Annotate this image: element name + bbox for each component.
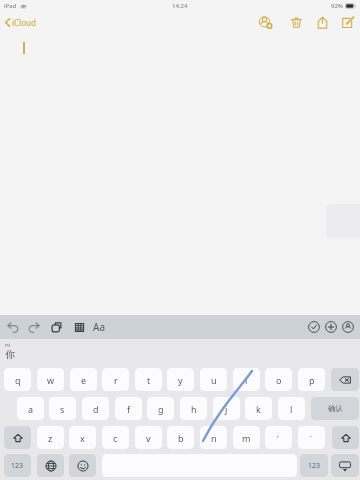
button[interactable]: Redo — [27, 320, 41, 334]
button[interactable]: p — [298, 368, 325, 391]
button[interactable]: Share — [315, 15, 329, 29]
staticText: c — [113, 432, 118, 444]
button[interactable]: 确认 — [311, 397, 359, 420]
button[interactable]: Add — [324, 320, 338, 334]
button[interactable]: a — [17, 397, 44, 420]
staticText: ni — [5, 341, 11, 349]
button[interactable]: n — [200, 426, 227, 449]
button[interactable]: iCloud — [0, 14, 42, 31]
staticText: f — [127, 403, 131, 415]
button[interactable]: h — [180, 397, 207, 420]
button[interactable]: i — [233, 368, 260, 391]
button[interactable]: f — [115, 397, 142, 420]
staticText: , — [277, 428, 280, 439]
staticText: q — [15, 374, 21, 386]
staticText: j — [225, 403, 228, 415]
staticText: 92% — [331, 2, 343, 10]
staticText: 14:24 — [172, 2, 188, 10]
button[interactable]: x — [69, 426, 96, 449]
button[interactable]: k — [245, 397, 272, 420]
button[interactable]: d — [82, 397, 109, 420]
button[interactable]: j — [213, 397, 240, 420]
button[interactable]: l — [278, 397, 305, 420]
button[interactable]: Paste — [49, 320, 63, 334]
button[interactable]: c — [102, 426, 129, 449]
button[interactable]: Compose — [340, 15, 354, 29]
button[interactable]: m — [233, 426, 260, 449]
staticText: w — [47, 374, 55, 386]
staticText: s — [60, 403, 65, 415]
staticText: u — [211, 374, 217, 386]
button[interactable]: Done — [307, 320, 321, 334]
staticText: m — [242, 432, 251, 444]
button[interactable]: Shift — [332, 426, 359, 449]
staticText: o — [276, 374, 282, 386]
button[interactable]: Emoji — [69, 454, 96, 477]
staticText: z — [48, 432, 53, 444]
staticText: 你 — [5, 348, 15, 361]
staticText: 123 — [11, 461, 24, 471]
button[interactable]: Aa — [90, 319, 108, 335]
button[interactable]: o — [265, 368, 292, 391]
staticText: b — [178, 432, 184, 444]
staticText: 123 — [308, 461, 321, 471]
button[interactable]: Table — [72, 320, 86, 334]
staticText: h — [191, 403, 197, 415]
staticText: e — [81, 374, 87, 386]
button[interactable]: t — [135, 368, 162, 391]
staticText: a — [28, 403, 34, 415]
staticText: l — [290, 403, 293, 415]
button[interactable]: Switch language — [37, 454, 64, 477]
button[interactable]: 123 — [4, 454, 31, 477]
button[interactable]: Undo — [6, 320, 20, 334]
staticText: x — [80, 432, 85, 444]
button[interactable]: Delete — [289, 15, 303, 29]
staticText: y — [178, 374, 183, 386]
staticText: t — [147, 374, 151, 386]
staticText: iPad — [4, 2, 17, 10]
button[interactable]: Backspace — [331, 368, 359, 391]
button[interactable]: v — [135, 426, 162, 449]
button[interactable]: z — [37, 426, 64, 449]
staticText: d — [93, 403, 99, 415]
staticText: r — [114, 374, 118, 386]
staticText: g — [158, 403, 164, 415]
staticText: v — [146, 432, 151, 444]
button[interactable]: Collaborate — [258, 15, 272, 29]
button[interactable]: Shift — [4, 426, 31, 449]
button[interactable]: e — [70, 368, 97, 391]
staticText: . — [310, 428, 313, 439]
staticText: 确认 — [328, 404, 343, 413]
staticText: Aa — [93, 320, 105, 334]
button[interactable]: y — [167, 368, 194, 391]
staticText: n — [211, 432, 217, 444]
button[interactable]: b — [167, 426, 194, 449]
button[interactable]: q — [4, 368, 31, 391]
button[interactable]: g — [147, 397, 174, 420]
button[interactable]: r — [102, 368, 129, 391]
button[interactable]: 123 — [300, 454, 328, 477]
button[interactable]: u — [200, 368, 227, 391]
staticText: p — [309, 374, 315, 386]
button[interactable]: Hide keyboard — [331, 454, 359, 477]
staticText: iCloud — [12, 17, 36, 28]
staticText: k — [256, 403, 261, 415]
button[interactable]: . — [298, 426, 325, 449]
button[interactable]: Account — [341, 320, 355, 334]
button[interactable]: , — [265, 426, 292, 449]
staticText: i — [245, 374, 248, 386]
button[interactable]: s — [49, 397, 76, 420]
button[interactable]: w — [37, 368, 64, 391]
